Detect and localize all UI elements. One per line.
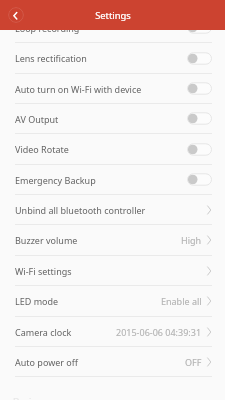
- button[interactable]: Video Rotate: [0, 134, 225, 164]
- staticText: Video Rotate: [15, 143, 187, 155]
- button[interactable]: LED mode: [0, 286, 225, 316]
- button[interactable]: Unbind all bluetooth controller: [0, 195, 225, 224]
- staticText: Auto turn on Wi-Fi with device: [15, 83, 187, 95]
- staticText: Buzzer volume: [15, 234, 181, 246]
- button[interactable]: Auto power off: [0, 347, 225, 376]
- staticText: High: [181, 234, 202, 246]
- staticText: Wi-Fi settings: [15, 265, 202, 277]
- button[interactable]: Buzzer volume: [0, 225, 225, 255]
- button[interactable]: Camera clock: [0, 317, 225, 346]
- button[interactable]: Loop recording: [0, 13, 225, 42]
- button[interactable]: AV Output: [0, 104, 225, 133]
- button[interactable]: Auto turn on Wi-Fi with device: [0, 74, 225, 103]
- button[interactable]: Lens rectification: [0, 43, 225, 73]
- staticText: Enable all: [161, 295, 202, 307]
- staticText: 2015-06-06 04:39:31: [116, 326, 202, 338]
- button[interactable]: Emergency Backup: [0, 165, 225, 194]
- button[interactable]: Wi-Fi settings: [0, 256, 225, 285]
- staticText: Settings: [95, 9, 131, 22]
- staticText: Devices: [13, 395, 46, 400]
- staticText: LED mode: [15, 295, 161, 307]
- staticText: Auto power off: [15, 356, 185, 368]
- staticText: Emergency Backup: [15, 174, 187, 186]
- staticText: OFF: [185, 356, 202, 368]
- button[interactable]: Back: [8, 7, 24, 23]
- staticText: AV Output: [15, 113, 187, 125]
- staticText: Lens rectification: [15, 52, 187, 64]
- staticText: Unbind all bluetooth controller: [15, 204, 202, 216]
- staticText: Camera clock: [15, 326, 116, 338]
- staticText: Loop recording: [15, 22, 187, 34]
